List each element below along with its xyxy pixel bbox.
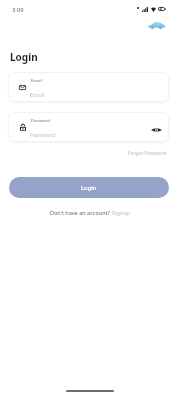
staticText: Password xyxy=(31,118,50,124)
button[interactable]: Signup xyxy=(112,209,131,216)
button[interactable]: Login xyxy=(9,177,169,198)
staticText: Forgot Password xyxy=(128,150,167,157)
staticText: Password xyxy=(30,131,56,139)
staticText: Signup xyxy=(112,209,131,216)
button[interactable]: Password xyxy=(8,112,169,142)
button[interactable]: Forgot Password xyxy=(128,150,167,157)
staticText: Don't have an account? xyxy=(50,209,112,216)
button[interactable]: Email xyxy=(8,72,169,102)
staticText: Email xyxy=(31,78,42,84)
staticText: Login xyxy=(10,50,38,64)
button[interactable]: Show password xyxy=(149,123,163,137)
staticText: Login xyxy=(81,184,97,192)
staticText: Email xyxy=(30,91,45,99)
staticText: 3:09 xyxy=(12,6,24,14)
